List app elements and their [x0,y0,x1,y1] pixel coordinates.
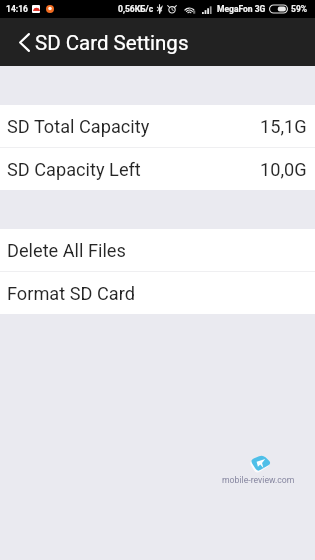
staticText: Delete All Files [7,240,126,261]
button[interactable]: Delete All Files [0,229,315,271]
staticText: 0,56КБ/c [118,4,154,14]
staticText: 10,0G [260,159,307,180]
staticText: mobile-review.com [222,475,295,485]
button[interactable]: SD Total Capacity [0,105,315,147]
staticText: 14:16 [6,4,28,14]
staticText: 15,1G [260,116,307,137]
button[interactable]: Format SD Card [0,272,315,314]
staticText: Format SD Card [7,283,135,304]
staticText: SD Total Capacity [7,116,150,137]
staticText: MegaFon 3G [217,4,266,14]
button[interactable]: Navigate up [7,18,41,66]
staticText: SD Card Settings [35,31,189,55]
button[interactable]: SD Capacity Left [0,148,315,190]
staticText: 59% [291,4,308,14]
staticText: SD Capacity Left [7,159,141,180]
